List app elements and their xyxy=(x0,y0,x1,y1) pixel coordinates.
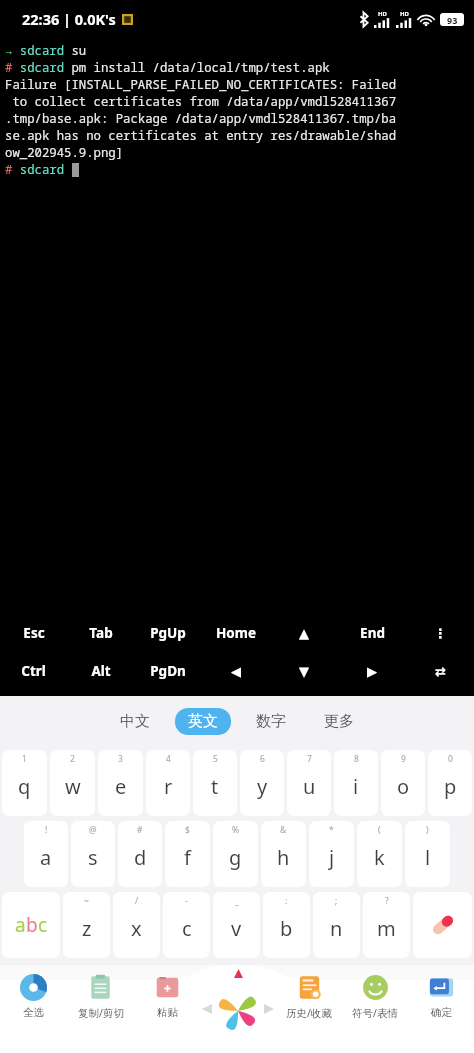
staticText: / xyxy=(135,895,139,907)
button[interactable]: c xyxy=(163,892,210,958)
button[interactable]: a xyxy=(24,821,68,887)
button[interactable]: ◀ xyxy=(202,652,270,690)
button[interactable]: e xyxy=(98,750,143,816)
staticText: _ xyxy=(235,895,239,907)
button[interactable]: Alt xyxy=(67,652,134,690)
staticText: 9 xyxy=(401,753,406,765)
staticText: @ xyxy=(89,824,97,836)
button[interactable]: w xyxy=(50,750,95,816)
staticText: f xyxy=(184,844,191,871)
staticText: ow_202945.9.png] xyxy=(5,144,124,161)
button[interactable]: Ctrl xyxy=(0,652,67,690)
button[interactable]: ▶ xyxy=(338,652,406,690)
staticText: c xyxy=(182,915,192,942)
button[interactable]: 中文 xyxy=(107,708,163,735)
staticText: 更多 xyxy=(324,712,354,731)
button[interactable]: 更多 xyxy=(311,708,367,735)
staticText: Home xyxy=(216,624,256,642)
button[interactable]: 历史/收藏 xyxy=(276,965,342,1053)
button[interactable]: o xyxy=(381,750,425,816)
staticText: e xyxy=(115,773,127,800)
button[interactable]: m xyxy=(363,892,410,958)
staticText: a xyxy=(40,844,52,871)
staticText: 93 xyxy=(447,14,458,26)
staticText: ( xyxy=(378,824,381,836)
staticText: g xyxy=(229,844,242,871)
button[interactable]: h xyxy=(261,821,306,887)
button[interactable]: PgDn xyxy=(134,652,202,690)
button[interactable]: ab xyxy=(2,892,60,958)
button[interactable]: t xyxy=(193,750,237,816)
button[interactable]: PgUp xyxy=(134,614,202,652)
staticText: a xyxy=(15,912,26,938)
button[interactable]: u xyxy=(287,750,331,816)
staticText: PgUp xyxy=(150,624,186,642)
button[interactable]: Home xyxy=(202,614,270,652)
button[interactable]: y xyxy=(240,750,284,816)
staticText: ~ xyxy=(84,895,89,907)
staticText: ! xyxy=(45,824,48,836)
staticText: x xyxy=(131,915,142,942)
staticText: l xyxy=(425,844,431,871)
staticText: Ctrl xyxy=(21,662,46,680)
button[interactable]: Esc xyxy=(0,614,67,652)
button[interactable]: 复制/剪切 xyxy=(67,965,134,1053)
button[interactable]: 符号/表情 xyxy=(342,965,408,1053)
staticText: : xyxy=(285,895,288,907)
staticText: 0 xyxy=(448,753,453,765)
button[interactable]: d xyxy=(118,821,162,887)
button[interactable]: b xyxy=(263,892,310,958)
staticText: ▲ xyxy=(299,626,309,641)
button[interactable]: 全选 xyxy=(0,965,67,1053)
staticText: # sdcard xyxy=(5,161,72,178)
staticText: o xyxy=(397,773,410,800)
button[interactable]: ▲ xyxy=(270,614,338,652)
staticText: 4 xyxy=(166,753,171,765)
button[interactable]: i xyxy=(334,750,378,816)
button[interactable]: z xyxy=(63,892,110,958)
button[interactable]: v xyxy=(213,892,260,958)
button[interactable]: f xyxy=(165,821,210,887)
staticText: q xyxy=(18,773,31,800)
staticText: to collect certificates from /data/app/v… xyxy=(5,93,397,110)
button[interactable]: l xyxy=(405,821,450,887)
button[interactable]: x xyxy=(113,892,160,958)
button[interactable]: 粘贴 xyxy=(134,965,200,1053)
button[interactable]: 英文 xyxy=(175,708,231,735)
button[interactable]: ▼ xyxy=(270,652,338,690)
staticText: z xyxy=(82,915,92,942)
staticText: .tmp/base.apk: Package /data/app/vmdl528… xyxy=(5,110,397,127)
button[interactable]: 数字 xyxy=(243,708,299,735)
staticText: 复制/剪切 xyxy=(78,1006,124,1020)
button[interactable]: p xyxy=(428,750,472,816)
staticText: 1 xyxy=(22,753,27,765)
button[interactable]: q xyxy=(2,750,47,816)
staticText: t xyxy=(211,773,219,800)
button[interactable]: k xyxy=(357,821,402,887)
button[interactable]: Backspace xyxy=(413,892,472,958)
staticText: → sdcard su xyxy=(5,42,87,59)
staticText: j xyxy=(329,844,335,871)
button[interactable]: Tab xyxy=(67,614,134,652)
staticText: se.apk has no certificates at entry res/… xyxy=(5,127,397,144)
button[interactable]: ⋮ xyxy=(406,614,474,652)
staticText: ▶ xyxy=(367,664,377,679)
button[interactable]: ⇄ xyxy=(406,652,474,690)
button[interactable]: 确定 xyxy=(408,965,474,1053)
button[interactable]: r xyxy=(146,750,190,816)
button[interactable]: j xyxy=(309,821,354,887)
staticText: b xyxy=(26,912,38,938)
button[interactable]: End xyxy=(338,614,406,652)
staticText: v xyxy=(231,915,242,942)
staticText: u xyxy=(303,773,316,800)
staticText: ⋮ xyxy=(434,626,447,641)
button[interactable]: n xyxy=(313,892,360,958)
staticText: ; xyxy=(335,895,338,907)
staticText: # sdcard pm install /data/local/tmp/test… xyxy=(5,59,330,76)
staticText: % xyxy=(232,824,240,836)
button[interactable]: s xyxy=(71,821,115,887)
staticText: m xyxy=(377,915,396,942)
staticText: h xyxy=(277,844,290,871)
button[interactable]: g xyxy=(213,821,258,887)
staticText: 全选 xyxy=(23,1006,44,1019)
